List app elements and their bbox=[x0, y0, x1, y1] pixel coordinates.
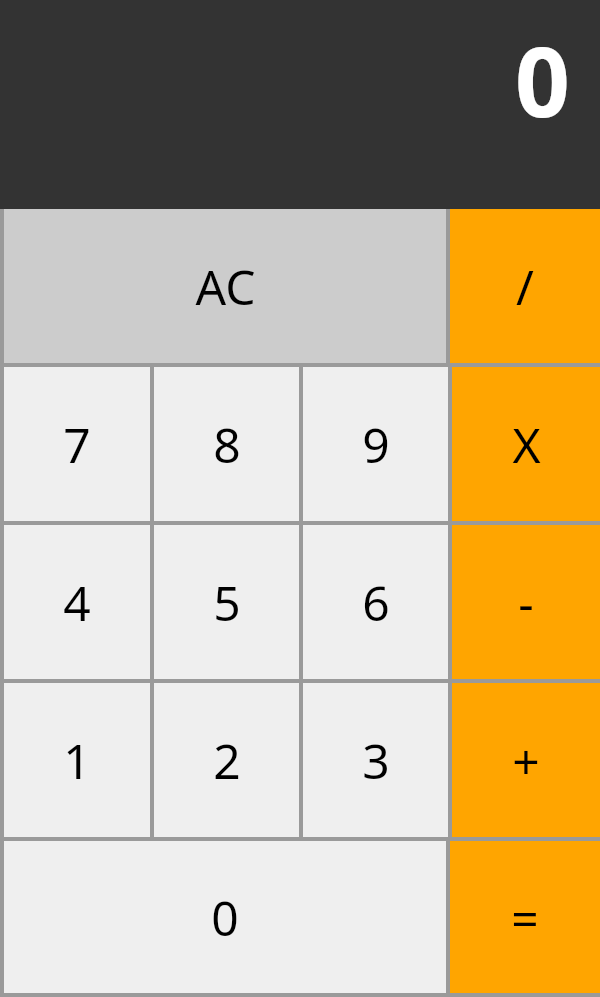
button[interactable]: 3 bbox=[303, 683, 448, 837]
staticText: 6 bbox=[362, 570, 390, 635]
staticText: 7 bbox=[63, 412, 91, 477]
button[interactable]: 7 bbox=[4, 367, 150, 521]
staticText: 3 bbox=[362, 728, 390, 793]
button[interactable]: X bbox=[452, 367, 600, 521]
button[interactable]: 4 bbox=[4, 525, 150, 679]
button[interactable]: 5 bbox=[154, 525, 299, 679]
button[interactable]: 1 bbox=[4, 683, 150, 837]
staticText: 1 bbox=[63, 728, 91, 793]
button[interactable]: - bbox=[452, 525, 600, 679]
staticText: 8 bbox=[213, 412, 241, 477]
staticText: 5 bbox=[213, 570, 241, 635]
button[interactable]: 8 bbox=[154, 367, 299, 521]
button[interactable]: + bbox=[452, 683, 600, 837]
staticText: 0 bbox=[211, 885, 239, 950]
staticText: 4 bbox=[63, 570, 91, 635]
staticText: 2 bbox=[213, 728, 241, 793]
button[interactable]: AC bbox=[4, 209, 446, 363]
button[interactable]: 0 bbox=[4, 841, 446, 993]
staticText: 0 bbox=[515, 14, 570, 145]
button[interactable]: 9 bbox=[303, 367, 448, 521]
staticText: 9 bbox=[362, 412, 390, 477]
button[interactable]: / bbox=[450, 209, 600, 363]
staticText: X bbox=[512, 412, 541, 477]
staticText: = bbox=[511, 885, 539, 950]
staticText: AC bbox=[195, 254, 256, 319]
button[interactable]: = bbox=[450, 841, 600, 993]
staticText: - bbox=[518, 570, 534, 635]
staticText: / bbox=[516, 254, 534, 319]
staticText: + bbox=[512, 728, 540, 793]
button[interactable]: 6 bbox=[303, 525, 448, 679]
button[interactable]: 2 bbox=[154, 683, 299, 837]
